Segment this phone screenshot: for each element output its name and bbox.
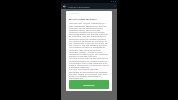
- staticText: This End User License Agreement is a leg…: [69, 22, 109, 35]
- button[interactable]: More options: [113, 4, 117, 8]
- staticText: OVERVIEW: [69, 12, 79, 15]
- staticText: UNDERSTOOD: [83, 84, 95, 86]
- button[interactable]: Back: [62, 4, 67, 9]
- staticText: End User License Agreement: [69, 18, 97, 21]
- staticText: You may not reverse engineer, decompile …: [69, 68, 109, 79]
- button[interactable]: UNDERSTOOD: [69, 80, 109, 89]
- staticText: You may install and use one copy of the …: [69, 57, 109, 68]
- staticText: License Agreement: [68, 5, 90, 8]
- staticText: The software product is protected by cop…: [69, 46, 109, 57]
- staticText: By installing, copying, downloading or o…: [69, 35, 109, 46]
